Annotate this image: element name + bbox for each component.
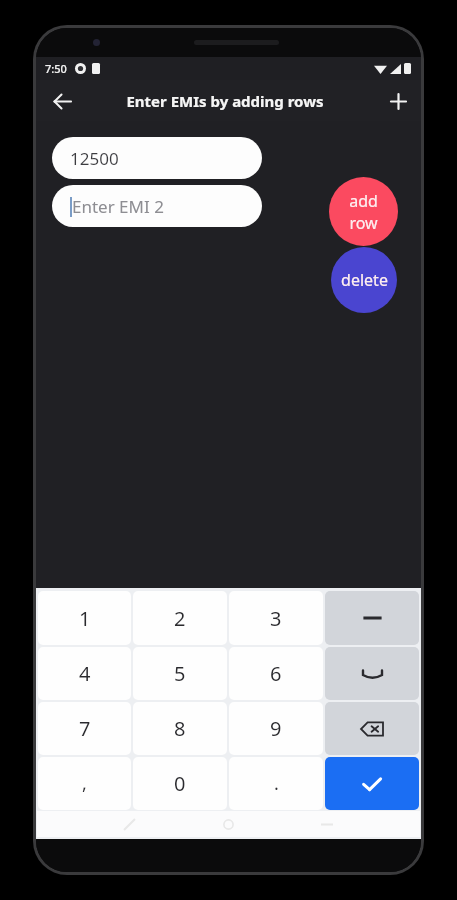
button[interactable]: Backspace <box>325 702 419 755</box>
staticText: 7:50 <box>45 61 67 76</box>
button[interactable]: Minus <box>325 591 419 645</box>
button[interactable]: 1 <box>38 591 131 645</box>
staticText: 5 <box>174 660 186 687</box>
button[interactable]: 8 <box>133 702 227 755</box>
staticText: add <box>349 190 378 212</box>
button[interactable]: 7 <box>38 702 131 755</box>
button[interactable]: 4 <box>38 647 131 700</box>
button[interactable]: 3 <box>229 591 323 645</box>
staticText: 7 <box>79 715 91 742</box>
staticText: 9 <box>270 715 282 742</box>
staticText: Enter EMIs by adding rows <box>126 91 324 111</box>
staticText: 3 <box>270 605 282 632</box>
button[interactable]: 6 <box>229 647 323 700</box>
staticText: delete <box>341 269 388 291</box>
staticText: 4 <box>79 660 91 687</box>
button[interactable]: Enter <box>325 757 419 810</box>
button[interactable]: 2 <box>133 591 227 645</box>
button[interactable]: 0 <box>133 757 227 810</box>
staticText: 2 <box>174 605 186 632</box>
button[interactable]: 12500 <box>52 137 262 179</box>
staticText: . <box>274 771 279 796</box>
button[interactable]: . <box>229 757 323 810</box>
staticText: 0 <box>174 770 186 797</box>
button[interactable]: delete <box>331 247 397 313</box>
staticText: row <box>349 212 378 234</box>
button[interactable]: , <box>38 757 131 810</box>
button[interactable]: 9 <box>229 702 323 755</box>
staticText: 1 <box>79 605 91 632</box>
button[interactable]: Enter EMI 2 <box>52 185 262 227</box>
staticText: 8 <box>174 715 186 742</box>
button[interactable]: Space <box>325 647 419 700</box>
button[interactable]: 5 <box>133 647 227 700</box>
button[interactable]: Add <box>381 84 415 118</box>
staticText: 6 <box>270 660 282 687</box>
button[interactable]: Back <box>44 83 80 119</box>
staticText: , <box>82 771 87 796</box>
button[interactable]: add <box>329 177 398 246</box>
staticText: Enter EMI 2 <box>72 195 164 218</box>
staticText: 12500 <box>70 147 119 170</box>
